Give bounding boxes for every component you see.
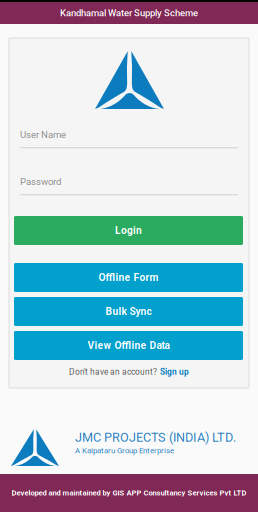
staticText: Don't have an account? [69, 367, 157, 377]
button[interactable]: View Offline Data [14, 331, 243, 360]
staticText: Kandhamal Water Supply Scheme [60, 7, 198, 19]
staticText: JMC PROJECTS (INDIA) LTD. [75, 430, 236, 445]
button[interactable]: Offline Form [14, 263, 243, 292]
staticText: Bulk Sync [105, 305, 151, 317]
staticText: Offline Form [98, 271, 158, 283]
staticText: Login [115, 224, 142, 236]
button[interactable]: Bulk Sync [14, 297, 243, 326]
staticText: Password [20, 176, 61, 187]
button[interactable]: Login [14, 216, 243, 245]
button[interactable]: Sign up [160, 367, 189, 377]
staticText: Developed and maintained by GIS APP Cons… [11, 488, 246, 497]
staticText: Sign up [160, 367, 189, 377]
staticText: View Offline Data [87, 339, 169, 351]
staticText: User Name [20, 129, 66, 140]
staticText: A Kalpataru Group Enterprise [75, 446, 174, 455]
